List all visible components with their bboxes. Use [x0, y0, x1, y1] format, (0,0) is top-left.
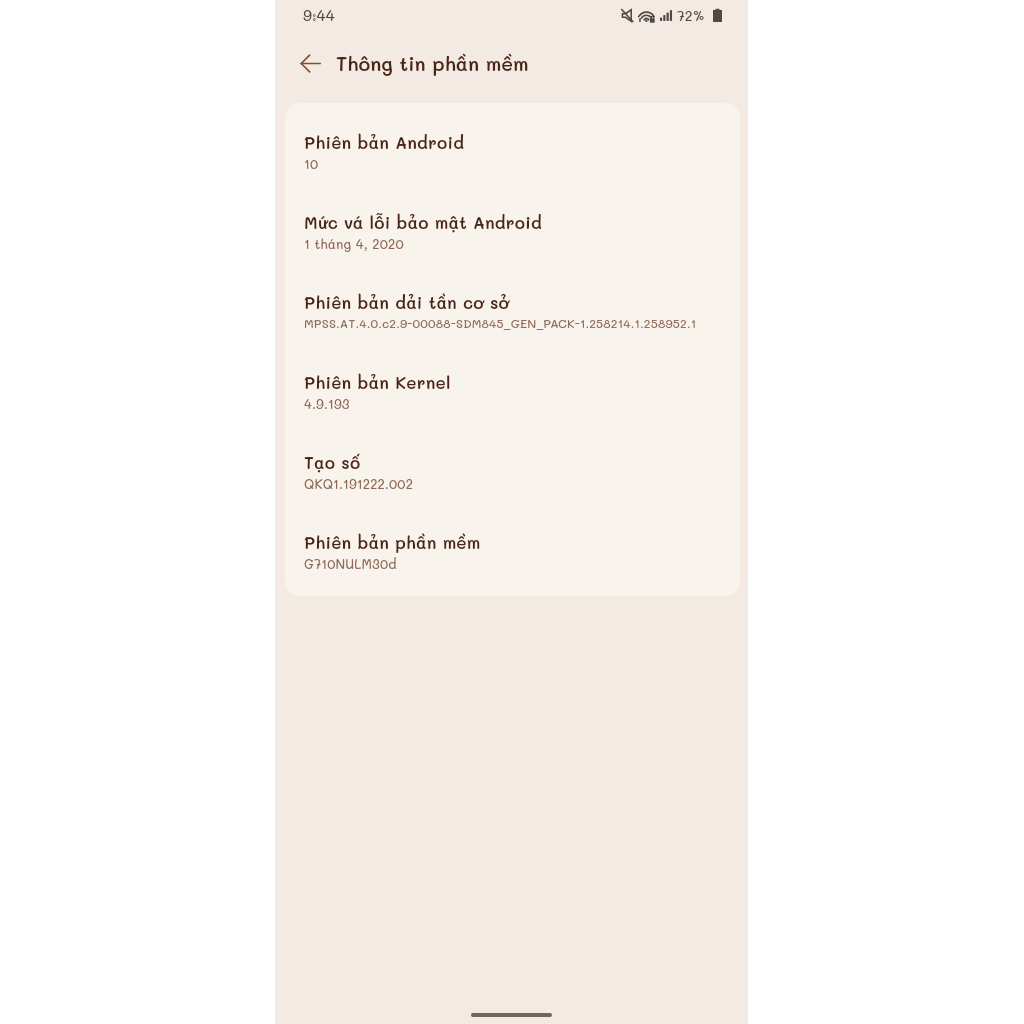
staticText: 10: [304, 155, 319, 172]
staticText: 1 tháng 4, 2020: [304, 235, 404, 252]
staticText: Mức vá lỗi bảo mật Android: [304, 211, 542, 233]
staticText: 4.9.193: [304, 395, 350, 412]
button[interactable]: Tạo số: [285, 423, 740, 503]
staticText: Phiên bản dải tần cơ sở: [304, 291, 509, 313]
button[interactable]: Back: [293, 46, 327, 80]
button[interactable]: Phiên bản Android: [285, 103, 740, 183]
staticText: Tạo số: [304, 451, 361, 473]
staticText: MPSS.AT.4.0.c2.9-00088-SDM845_GEN_PACK-1…: [304, 315, 697, 331]
staticText: G710NULM30d: [304, 555, 397, 572]
staticText: 9:44: [303, 5, 335, 24]
button[interactable]: Mức vá lỗi bảo mật Android: [285, 183, 740, 263]
button[interactable]: Phiên bản Kernel: [285, 343, 740, 423]
staticText: 72%: [677, 6, 706, 24]
button[interactable]: Phiên bản phần mềm: [285, 503, 740, 583]
staticText: Phiên bản phần mềm: [304, 531, 481, 553]
staticText: Thông tin phần mềm: [336, 51, 529, 76]
staticText: Phiên bản Android: [304, 131, 465, 153]
staticText: QKQ1.191222.002: [304, 475, 414, 492]
staticText: Phiên bản Kernel: [304, 371, 451, 393]
button[interactable]: Phiên bản dải tần cơ sở: [285, 263, 740, 343]
